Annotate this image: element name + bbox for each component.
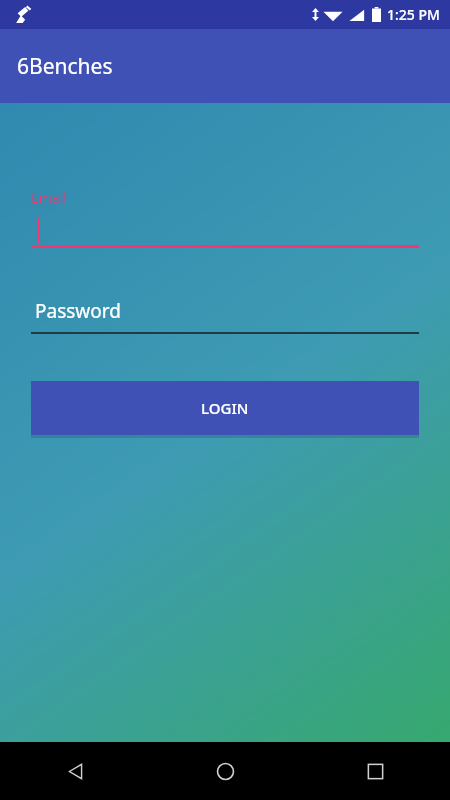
staticText: 1:25 PM <box>387 5 440 24</box>
button[interactable]: Recent apps <box>300 742 450 800</box>
button[interactable]: LOGIN <box>31 381 419 435</box>
staticText: Email <box>31 188 67 207</box>
staticText: 6Benches <box>17 52 113 81</box>
button[interactable]: Home <box>150 742 300 800</box>
staticText: Password <box>35 298 121 324</box>
button[interactable]: Password <box>31 296 419 326</box>
button[interactable]: Back <box>0 742 150 800</box>
button[interactable] <box>31 215 419 245</box>
staticText: LOGIN <box>201 398 249 418</box>
